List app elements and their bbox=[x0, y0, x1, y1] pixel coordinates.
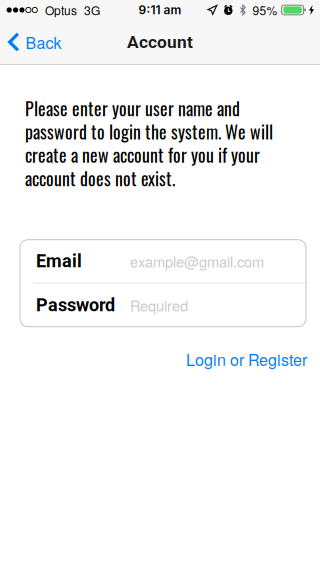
button[interactable]: Login or Register bbox=[186, 342, 307, 377]
button[interactable]: Password bbox=[20, 284, 306, 327]
staticText: 9:11 am bbox=[138, 3, 181, 17]
staticText: Please enter your user name and password… bbox=[25, 96, 273, 190]
staticText: example@gmail.com bbox=[130, 251, 264, 272]
button[interactable]: Email bbox=[20, 240, 306, 283]
staticText: 3G bbox=[84, 1, 100, 19]
staticText: Account bbox=[127, 32, 193, 52]
staticText: Email bbox=[36, 251, 82, 272]
staticText: Optus bbox=[45, 1, 77, 19]
staticText: Required bbox=[130, 295, 188, 316]
staticText: Password bbox=[36, 295, 115, 316]
staticText: Login or Register bbox=[186, 348, 307, 371]
button[interactable]: Back bbox=[0, 20, 72, 64]
staticText: 95% bbox=[253, 1, 278, 19]
staticText: Back bbox=[26, 30, 62, 53]
